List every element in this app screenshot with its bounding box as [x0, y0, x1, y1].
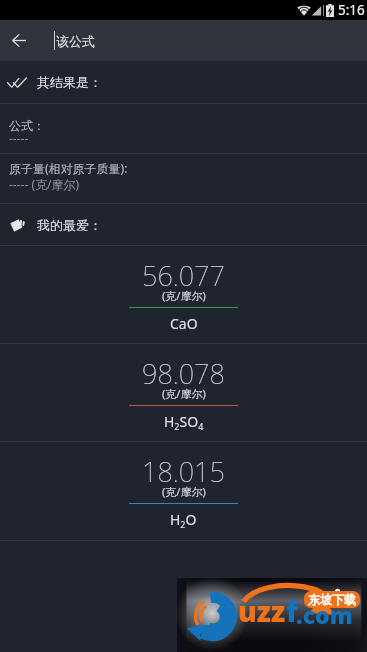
button[interactable]: 其结果是：	[0, 61, 367, 103]
staticText: 我的最爱：	[37, 217, 102, 233]
staticText: 东坡下载	[308, 592, 356, 607]
staticText: 5:16	[338, 1, 365, 19]
button[interactable]: 我的最爱：	[0, 204, 367, 245]
staticText: ----- (克/摩尔)	[9, 176, 80, 192]
staticText: (克/摩尔)	[162, 288, 206, 303]
staticText: (克/摩尔)	[162, 386, 206, 401]
staticText: H2SO4	[164, 412, 204, 432]
staticText: 18.015	[142, 453, 225, 490]
staticText: 该公式	[56, 33, 95, 49]
staticText: 56.077	[142, 257, 225, 294]
staticText: CaO	[170, 314, 198, 333]
staticText: 原子量(相对原子质量):	[9, 160, 128, 176]
staticText: f	[286, 592, 298, 630]
staticText: H2O	[170, 510, 197, 530]
staticText: 98.078	[142, 355, 225, 392]
button[interactable]: 98.078	[0, 344, 367, 441]
button[interactable]: Back	[0, 20, 38, 61]
staticText: -----	[9, 130, 29, 146]
staticText: 其结果是：	[37, 74, 102, 90]
staticText: .com	[296, 599, 353, 630]
staticText: 公式：	[9, 118, 45, 133]
staticText: (克/摩尔)	[162, 484, 206, 499]
button[interactable]: 56.077	[0, 246, 367, 343]
staticText: uzz	[238, 592, 286, 630]
button[interactable]: 18.015	[0, 442, 367, 540]
